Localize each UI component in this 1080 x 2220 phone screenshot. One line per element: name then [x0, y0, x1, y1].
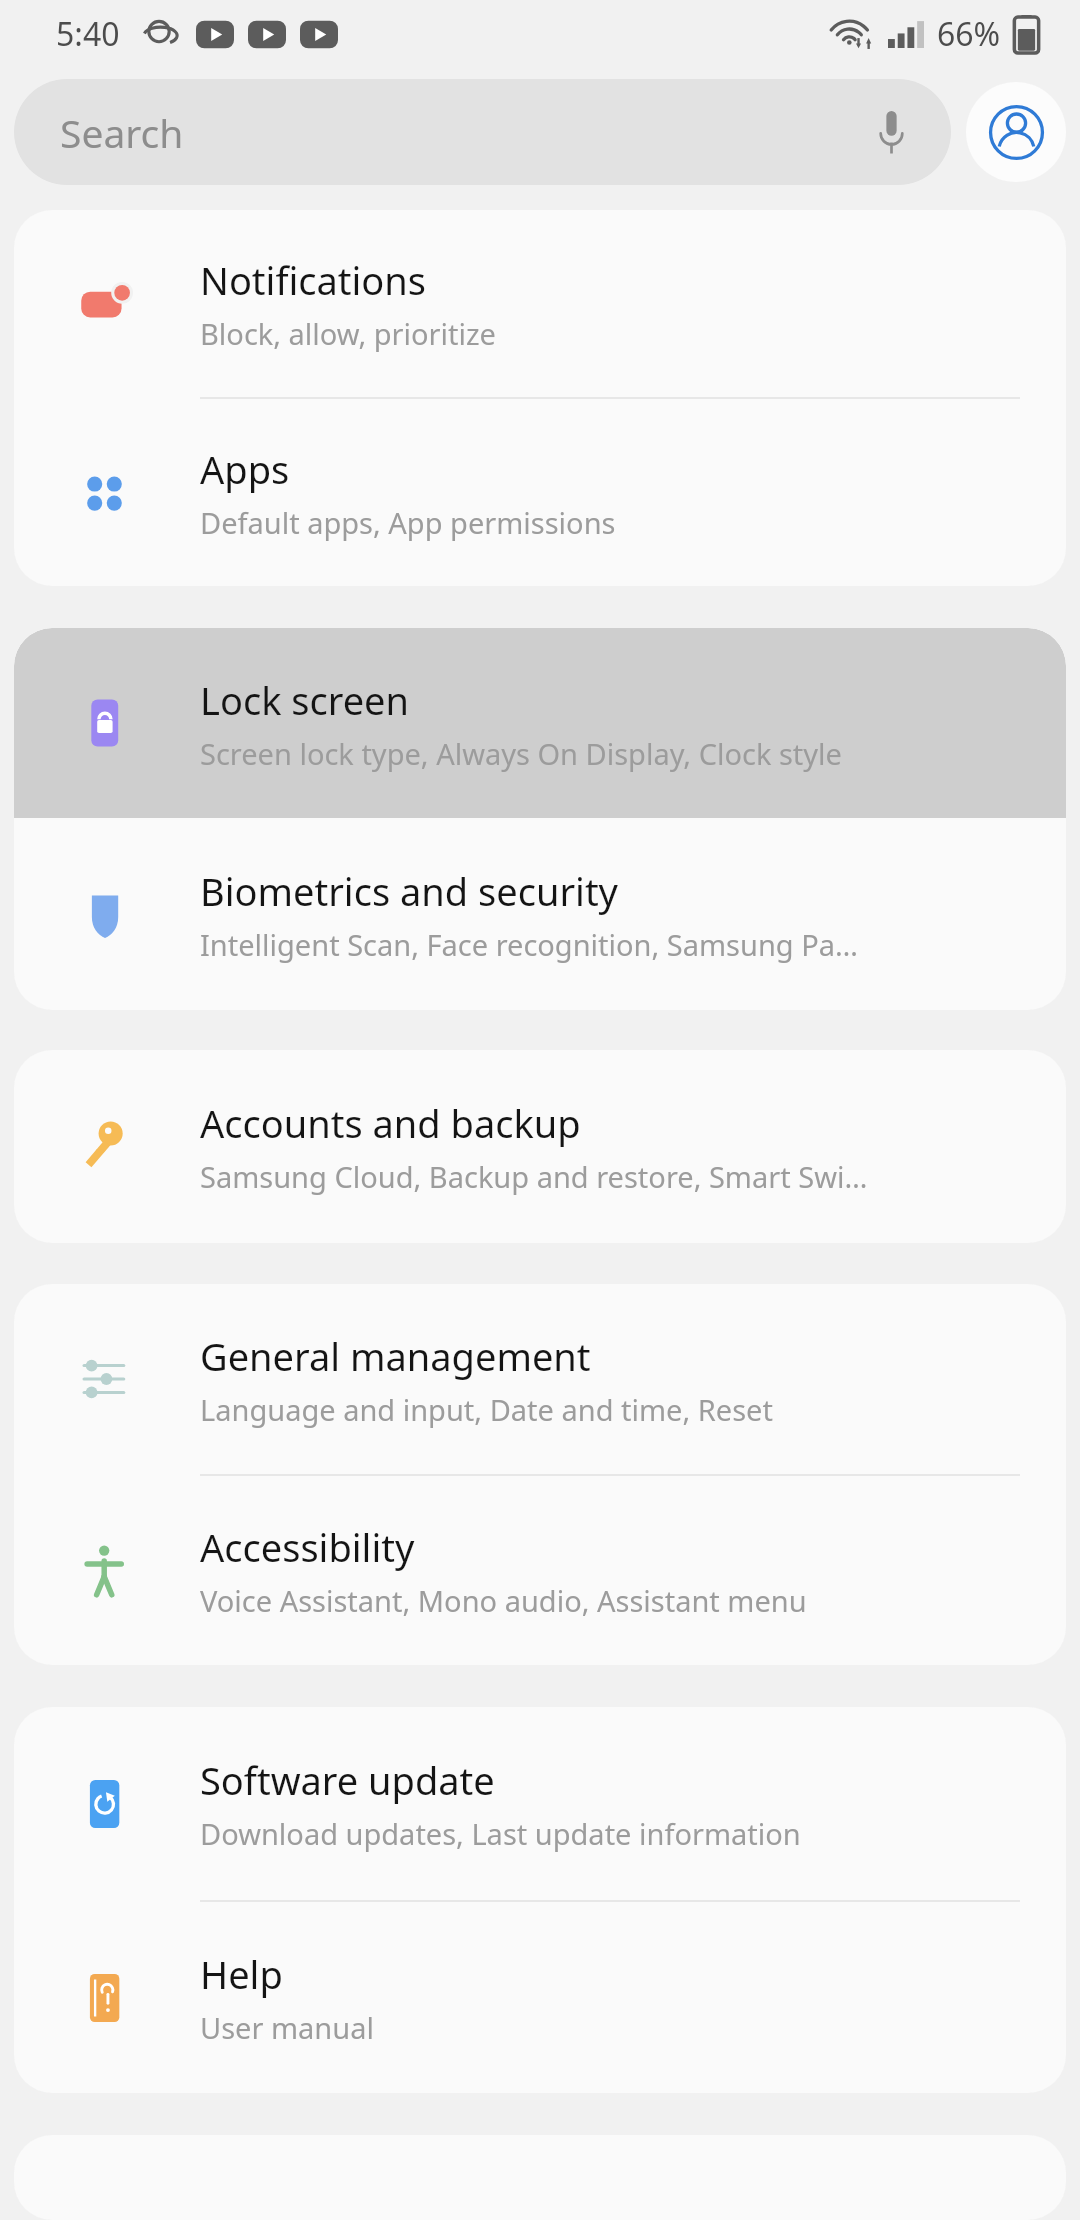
button[interactable]: Voice search — [861, 102, 921, 162]
button[interactable]: General management — [14, 1284, 1066, 1474]
staticText: Intelligent Scan, Face recognition, Sams… — [200, 925, 858, 964]
staticText: Help — [200, 1948, 283, 2000]
button[interactable]: Search — [14, 79, 951, 185]
button[interactable]: Notifications — [14, 210, 1066, 397]
button[interactable]: Lock screen — [14, 628, 1066, 818]
staticText: Accounts and backup — [200, 1097, 581, 1149]
staticText: User manual — [200, 2008, 374, 2047]
button[interactable]: Apps — [14, 399, 1066, 586]
staticText: Language and input, Date and time, Reset — [200, 1390, 773, 1429]
staticText: Search — [60, 106, 861, 159]
button[interactable]: Accessibility — [14, 1476, 1066, 1665]
staticText: Software update — [200, 1754, 495, 1806]
button[interactable]: Software update — [14, 1707, 1066, 1900]
staticText: Accessibility — [200, 1521, 415, 1573]
staticText: Screen lock type, Always On Display, Clo… — [200, 734, 842, 773]
button[interactable]: Help — [14, 1902, 1066, 2093]
staticText: Download updates, Last update informatio… — [200, 1814, 801, 1853]
staticText: Samsung Cloud, Backup and restore, Smart… — [200, 1157, 868, 1196]
staticText: Default apps, App permissions — [200, 503, 616, 542]
staticText: Notifications — [200, 254, 427, 306]
staticText: Biometrics and security — [200, 865, 619, 917]
button[interactable]: Accounts and backup — [14, 1050, 1066, 1243]
staticText: Voice Assistant, Mono audio, Assistant m… — [200, 1581, 807, 1620]
staticText: Lock screen — [200, 674, 410, 726]
staticText: Block, allow, prioritize — [200, 314, 496, 353]
staticText: 5:40 — [56, 12, 120, 56]
button[interactable]: Biometrics and security — [14, 818, 1066, 1010]
staticText: General management — [200, 1330, 591, 1382]
staticText: 66% — [937, 12, 1001, 56]
button[interactable]: Account — [966, 82, 1066, 182]
staticText: Apps — [200, 443, 290, 495]
